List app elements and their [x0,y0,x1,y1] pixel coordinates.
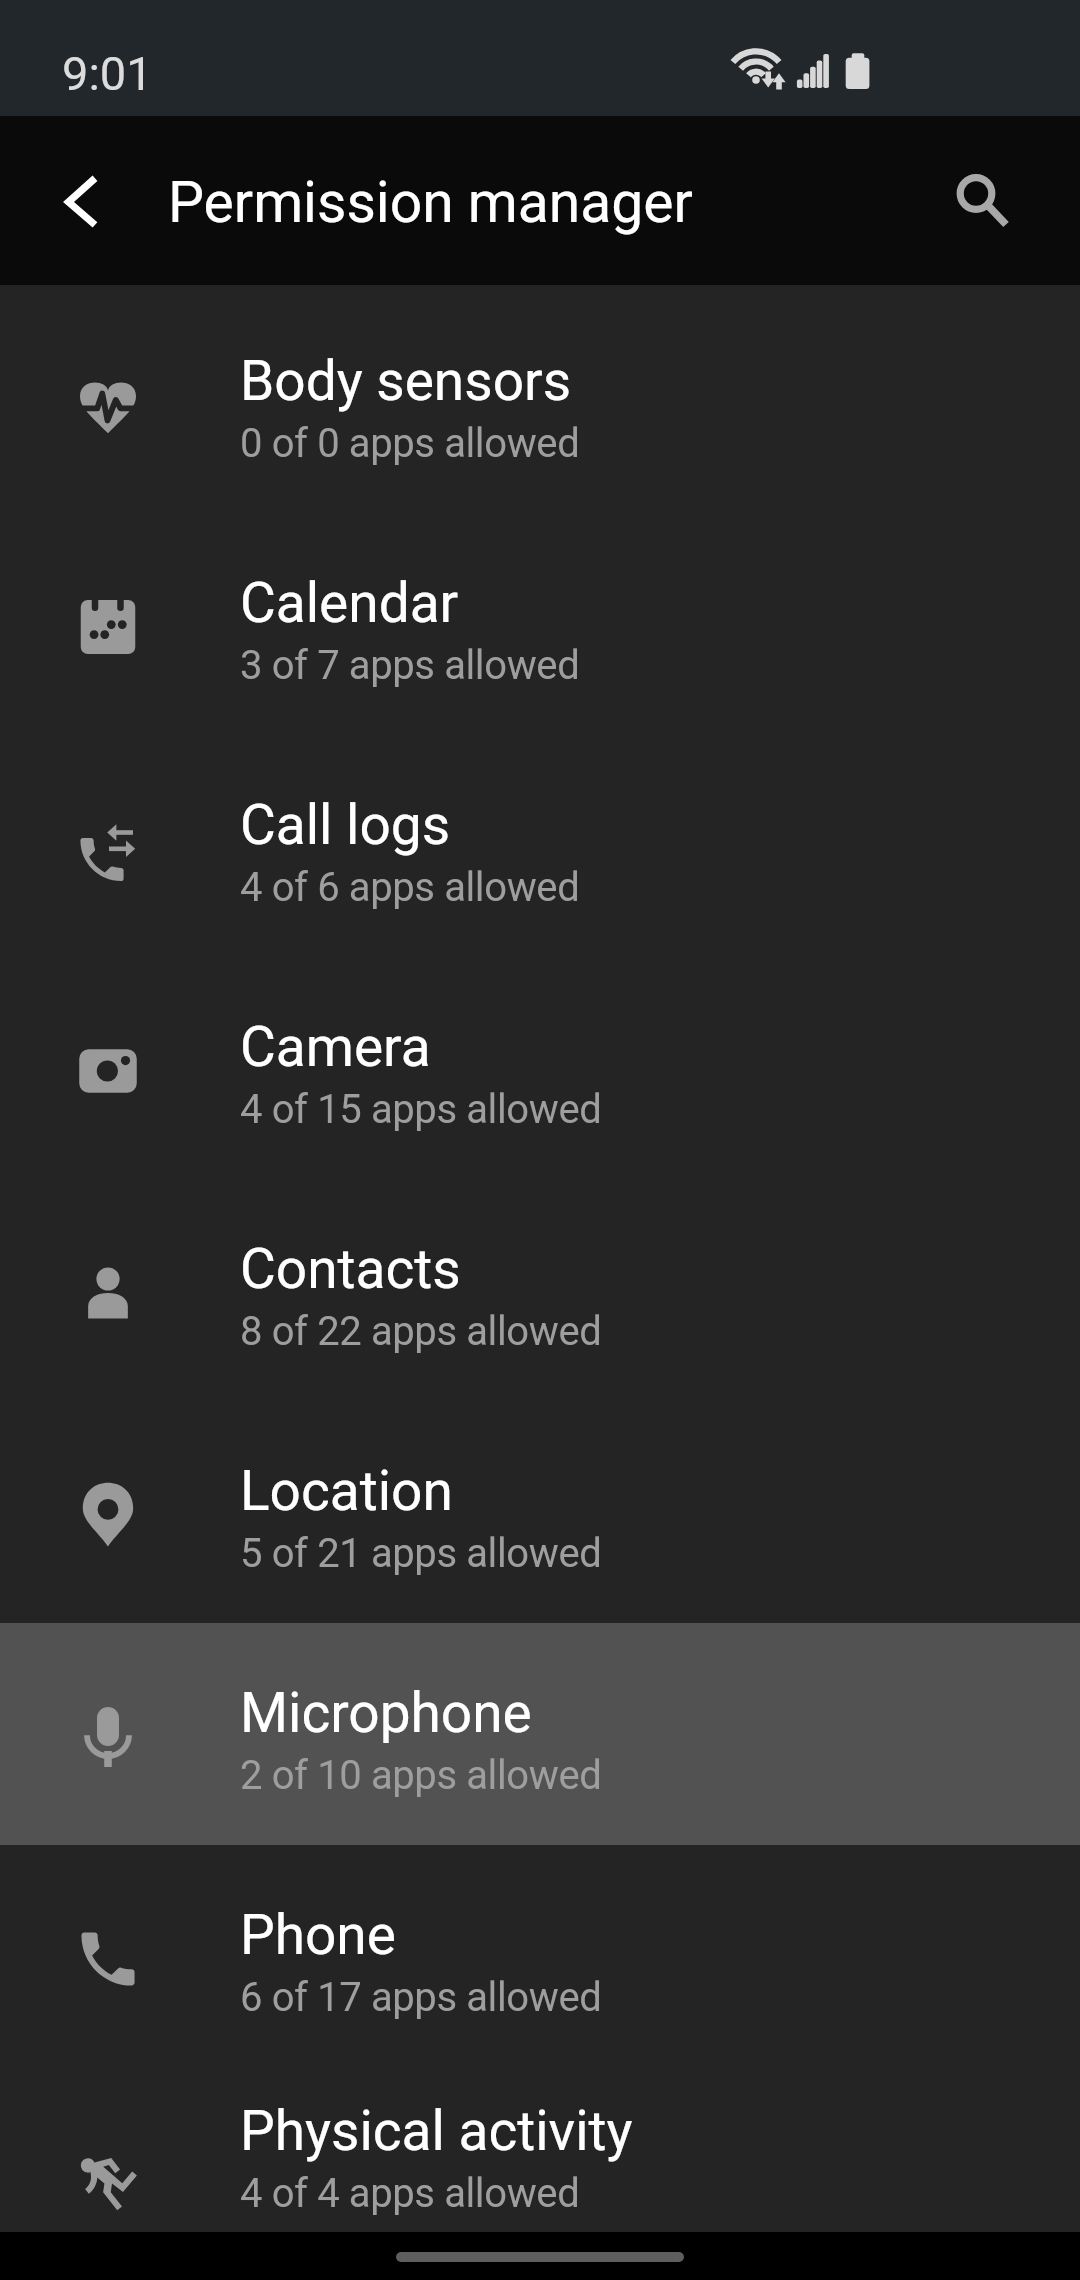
staticText: Camera [240,1015,431,1079]
staticText: Call logs [240,793,451,857]
button[interactable]: Body sensors [0,291,1080,513]
button[interactable]: Contacts [0,1179,1080,1401]
button[interactable]: Physical activity [0,2067,1080,2238]
button[interactable]: Camera [0,957,1080,1179]
button[interactable]: Phone [0,1845,1080,2067]
staticText: Permission manager [168,169,693,236]
staticText: Body sensors [240,349,572,413]
button[interactable]: Search [936,141,1056,261]
staticText: 6 of 17 apps allowed [240,1974,602,2021]
staticText: Calendar [240,571,459,635]
staticText: Microphone [240,1681,532,1745]
button[interactable]: Calendar [0,513,1080,735]
staticText: 8 of 22 apps allowed [240,1308,602,1355]
staticText: 4 of 6 apps allowed [240,864,580,911]
staticText: 0 of 0 apps allowed [240,420,580,467]
button[interactable]: Microphone [0,1623,1080,1845]
staticText: 4 of 15 apps allowed [240,1086,602,1133]
staticText: 5 of 21 apps allowed [240,1530,602,1577]
staticText: 9:01 [62,46,153,101]
button[interactable]: Location [0,1401,1080,1623]
staticText: Phone [240,1903,396,1967]
staticText: 4 of 4 apps allowed [240,2170,580,2217]
staticText: Location [240,1459,453,1523]
staticText: Contacts [240,1237,461,1301]
staticText: 2 of 10 apps allowed [240,1752,602,1799]
button[interactable]: Call logs [0,735,1080,957]
staticText: 3 of 7 apps allowed [240,642,580,689]
button[interactable]: Back [26,146,136,256]
staticText: Physical activity [240,2099,633,2163]
